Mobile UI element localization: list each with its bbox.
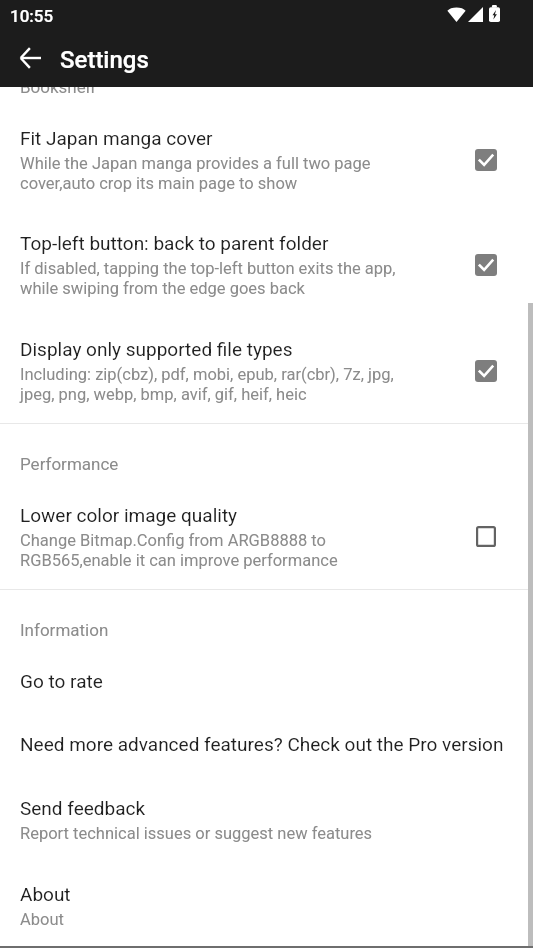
- button[interactable]: Disabled: Lower color image quality: [460, 510, 512, 562]
- staticText: 10:55: [10, 6, 54, 26]
- staticText: About: [20, 910, 513, 929]
- staticText: While the Japan manga provides a full tw…: [20, 154, 463, 193]
- staticText: Top-left button: back to parent folder: [20, 232, 463, 254]
- staticText: Go to rate: [20, 670, 513, 692]
- button[interactable]: About: [0, 864, 533, 948]
- staticText: Change Bitmap.Config from ARGB8888 to RG…: [20, 531, 463, 570]
- other: Cellular signal: [468, 7, 483, 22]
- staticText: Need more advanced features? Check out t…: [20, 733, 527, 755]
- button[interactable]: Enabled: Display only supported file typ…: [460, 345, 512, 397]
- staticText: Including: zip(cbz), pdf, mobi, epub, ra…: [20, 365, 463, 404]
- button[interactable]: Lower color image quality: [0, 490, 533, 589]
- other: Battery charging: [489, 5, 500, 22]
- button[interactable]: Back: [5, 33, 55, 83]
- staticText: Information: [20, 620, 109, 640]
- staticText: About: [20, 883, 513, 905]
- button[interactable]: Display only supported file types: [0, 324, 533, 423]
- button[interactable]: Need more advanced features? Check out t…: [0, 715, 533, 778]
- staticText: Performance: [20, 454, 119, 474]
- button[interactable]: Enabled: Top-left button: back to parent…: [460, 239, 512, 291]
- staticText: If disabled, tapping the top-left button…: [20, 259, 463, 298]
- staticText: Lower color image quality: [20, 504, 463, 526]
- button[interactable]: Enabled: Fit Japan manga cover: [460, 134, 512, 186]
- staticText: Display only supported file types: [20, 338, 463, 360]
- other: Wi-Fi: [447, 6, 466, 22]
- staticText: Fit Japan manga cover: [20, 127, 463, 149]
- button[interactable]: Send feedback: [0, 779, 533, 864]
- staticText: Send feedback: [20, 797, 513, 819]
- button[interactable]: Fit Japan manga cover: [0, 113, 533, 218]
- staticText: Settings: [60, 46, 149, 74]
- button[interactable]: Go to rate: [0, 652, 533, 715]
- button[interactable]: Top-left button: back to parent folder: [0, 218, 533, 324]
- staticText: Bookshelf: [20, 77, 96, 97]
- staticText: Report technical issues or suggest new f…: [20, 824, 513, 843]
